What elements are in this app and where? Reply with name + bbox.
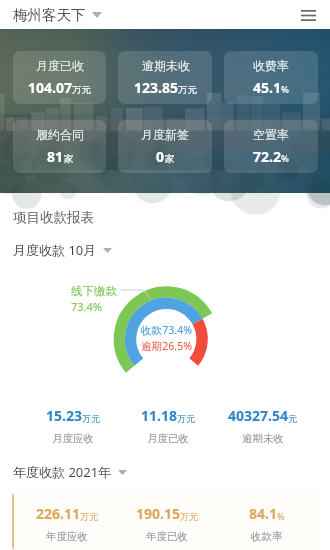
staticText: 逾期未收 <box>142 58 190 73</box>
button[interactable]: 年度收款 2021年 <box>13 463 127 481</box>
staticText: 月度收款 10月 <box>13 241 97 259</box>
staticText: 空置率 <box>253 127 289 142</box>
staticText: 万元 <box>177 413 195 424</box>
staticText: 万元 <box>180 511 198 522</box>
button[interactable]: 梅州客天下 <box>13 6 102 24</box>
staticText: 逾期26.5% <box>141 339 193 353</box>
staticText: 履约合同 <box>36 127 84 142</box>
button[interactable]: 月度收款 10月 <box>13 241 112 259</box>
button[interactable]: 逾期未收 <box>118 51 212 104</box>
staticText: 123.85 <box>134 78 178 97</box>
staticText: 元 <box>288 413 297 424</box>
staticText: 收费率 <box>253 58 289 73</box>
button[interactable]: 月度新签 <box>118 120 212 173</box>
staticText: 226.11 <box>36 504 80 523</box>
staticText: 年度已收 <box>146 530 188 543</box>
staticText: 月度已收 <box>36 58 84 73</box>
staticText: 73.4% <box>71 299 102 314</box>
staticText: 0 <box>156 147 165 166</box>
button[interactable]: 空置率 <box>224 120 318 173</box>
staticText: 万元 <box>72 84 91 96</box>
staticText: 收款73.4% <box>141 323 193 337</box>
staticText: 81 <box>47 147 64 166</box>
staticText: 万元 <box>82 413 100 424</box>
staticText: 收款率 <box>251 530 283 543</box>
staticText: 万元 <box>178 84 197 96</box>
button[interactable]: Menu <box>296 3 320 27</box>
staticText: 72.2 <box>253 147 281 166</box>
staticText: 190.15 <box>136 504 180 523</box>
staticText: 梅州客天下 <box>13 6 86 24</box>
staticText: 家 <box>165 153 175 165</box>
staticText: 家 <box>64 153 74 165</box>
staticText: % <box>281 83 289 96</box>
button[interactable]: 收费率 <box>224 51 318 104</box>
staticText: 84.1 <box>249 504 277 523</box>
staticText: 月度已收 <box>147 432 189 445</box>
staticText: 月度新签 <box>141 127 189 142</box>
staticText: 项目收款报表 <box>13 209 94 226</box>
staticText: 104.07 <box>28 78 72 97</box>
staticText: 月度应收 <box>52 432 94 445</box>
staticText: 40327.54 <box>228 406 288 425</box>
staticText: % <box>281 152 289 165</box>
staticText: 15.23 <box>46 406 82 425</box>
staticText: 11.18 <box>141 406 177 425</box>
staticText: 线下缴款 <box>71 284 117 298</box>
staticText: 年度收款 2021年 <box>13 463 112 481</box>
staticText: % <box>277 510 285 522</box>
staticText: 年度应收 <box>46 530 88 543</box>
staticText: 45.1 <box>253 78 281 97</box>
staticText: 万元 <box>80 511 98 522</box>
staticText: 逾期未收 <box>242 432 284 445</box>
button[interactable]: 月度已收 <box>13 51 106 104</box>
button[interactable]: 履约合同 <box>13 120 106 173</box>
